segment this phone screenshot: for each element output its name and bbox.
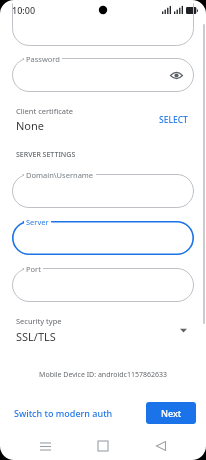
staticText: None [16,118,45,133]
button[interactable]: Server [12,221,194,255]
button[interactable]: Client certificate [16,106,153,133]
button[interactable]: Security type [12,316,194,344]
button[interactable]: Show password [168,67,184,83]
staticText: Port [26,264,41,274]
staticText: Next [161,407,182,419]
staticText: Domain\Username [26,170,94,180]
button[interactable]: SELECT [153,110,194,130]
button[interactable]: Password [12,58,194,92]
staticText: Password [26,54,60,64]
button[interactable]: Switch to modern auth [10,402,117,424]
staticText: Mobile Device ID: androidc1157862633 [12,370,194,380]
button[interactable]: Port [12,268,194,302]
button[interactable]: Recent apps [32,433,58,459]
staticText: Switch to modern auth [14,407,113,419]
staticText: 10:00 [12,4,36,16]
button[interactable]: Back [148,433,174,459]
staticText: SELECT [159,114,188,126]
staticText: Client certificate [16,106,73,116]
staticText: SSL/TLS [16,329,56,344]
staticText: SERVER SETTINGS [16,150,76,160]
button[interactable]: Domain\Username [12,174,194,208]
button[interactable]: Next [146,402,196,424]
button[interactable]: Home [90,433,116,459]
staticText: Security type [16,316,62,326]
button[interactable] [12,20,194,46]
staticText: Server [26,217,49,227]
